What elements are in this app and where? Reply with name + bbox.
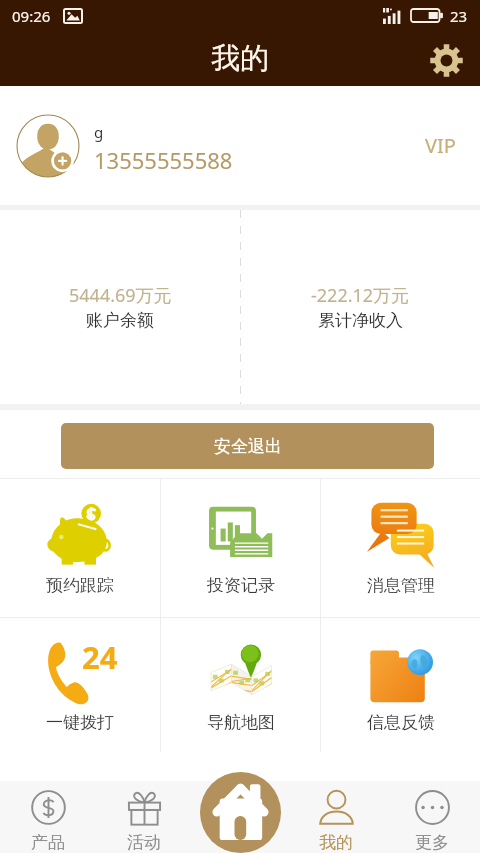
staticText: 产品 <box>31 832 65 853</box>
button[interactable]: 预约跟踪 <box>0 479 160 617</box>
button[interactable]: 投资记录 <box>161 479 320 617</box>
staticText: 23 <box>450 6 468 26</box>
staticText: 活动 <box>127 832 161 853</box>
button[interactable]: 安全退出 <box>61 423 434 469</box>
staticText: 导航地图 <box>207 712 275 733</box>
staticText: 24 <box>82 636 118 678</box>
staticText: 投资记录 <box>207 575 275 596</box>
staticText: VIP <box>425 132 456 159</box>
button[interactable]: 24 <box>0 618 160 752</box>
button[interactable]: 5444.69万元 <box>0 210 240 404</box>
staticText: 我的 <box>319 832 353 853</box>
button[interactable]: 信息反馈 <box>321 618 480 752</box>
staticText: 更多 <box>415 832 449 853</box>
button[interactable]: 导航地图 <box>161 618 320 752</box>
staticText: 一键拨打 <box>46 712 114 733</box>
staticText: 消息管理 <box>367 575 435 596</box>
staticText: 我的 <box>211 40 269 77</box>
staticText: -222.12万元 <box>311 283 410 308</box>
staticText: 预约跟踪 <box>46 575 114 596</box>
button[interactable]: -222.12万元 <box>240 210 480 404</box>
staticText: 09:26 <box>12 6 51 26</box>
button[interactable]: 更多 <box>384 781 480 853</box>
button[interactable]: 消息管理 <box>321 479 480 617</box>
staticText: 安全退出 <box>214 436 282 457</box>
button[interactable]: Settings <box>428 40 464 76</box>
staticText: 13555555588 <box>94 145 233 175</box>
button[interactable]: g <box>0 86 480 205</box>
button[interactable]: 产品 <box>0 781 96 853</box>
staticText: 5444.69万元 <box>69 283 172 308</box>
staticText: g <box>94 122 104 142</box>
staticText: 信息反馈 <box>367 712 435 733</box>
button[interactable]: Home <box>200 772 281 853</box>
button[interactable]: 我的 <box>288 781 384 853</box>
button[interactable]: 活动 <box>96 781 192 853</box>
staticText: 累计净收入 <box>318 310 403 331</box>
staticText: 账户余额 <box>86 310 154 331</box>
